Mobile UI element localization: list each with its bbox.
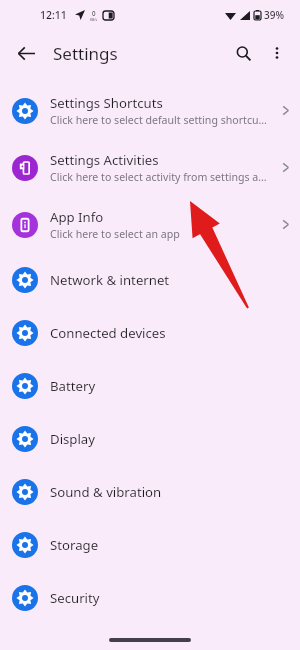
button[interactable]: Network & internet xyxy=(0,253,300,306)
button[interactable]: Back xyxy=(8,35,44,71)
staticText: Storage xyxy=(50,536,99,554)
staticText: Click here to select activity from setti… xyxy=(50,170,267,184)
button[interactable]: Storage xyxy=(0,518,300,571)
staticText: Battery xyxy=(50,377,96,395)
button[interactable]: Connected devices xyxy=(0,306,300,359)
button[interactable]: Security xyxy=(0,571,300,624)
staticText: Security xyxy=(50,589,100,607)
staticText: 0 xyxy=(92,9,96,17)
staticText: 12:11 xyxy=(40,8,67,22)
button[interactable]: Battery xyxy=(0,359,300,412)
staticText: Settings Activities xyxy=(50,151,159,169)
button[interactable]: Settings Shortcuts xyxy=(0,82,300,139)
staticText: KB/s xyxy=(90,17,98,22)
button[interactable]: Settings Activities xyxy=(0,139,300,196)
button[interactable]: Sound & vibration xyxy=(0,465,300,518)
staticText: Network & internet xyxy=(50,271,170,289)
staticText: App Info xyxy=(50,208,104,226)
staticText: Connected devices xyxy=(50,324,166,342)
staticText: Click here to select an app xyxy=(50,227,180,241)
staticText: Display xyxy=(50,430,95,448)
staticText: Settings xyxy=(53,42,118,65)
staticText: Settings Shortcuts xyxy=(50,94,163,112)
staticText: Sound & vibration xyxy=(50,483,162,501)
button[interactable]: App Info xyxy=(0,196,300,253)
button[interactable]: More options xyxy=(260,36,294,70)
button[interactable]: Search xyxy=(226,36,260,70)
staticText: 39% xyxy=(264,8,284,22)
staticText: Click here to select default setting sho… xyxy=(50,113,267,127)
button[interactable]: Display xyxy=(0,412,300,465)
